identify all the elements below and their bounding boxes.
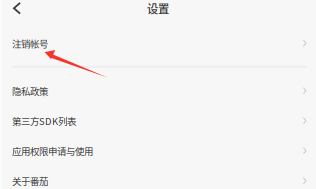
staticText: 关于番茄 (12, 174, 48, 188)
staticText: 注销帐号 (12, 36, 48, 50)
staticText: 应用权限申请与使用 (12, 144, 93, 158)
staticText: 第三方SDK列表 (12, 114, 76, 128)
staticText: 隐私政策 (12, 84, 48, 98)
staticText: 设置 (147, 0, 169, 16)
button[interactable]: Back (0, 0, 34, 18)
button[interactable]: 隐私政策 (0, 76, 316, 106)
button[interactable]: 关于番茄 (0, 166, 316, 189)
button[interactable]: 注销帐号 (0, 28, 316, 58)
button[interactable]: 第三方SDK列表 (0, 106, 316, 136)
button[interactable]: 应用权限申请与使用 (0, 136, 316, 166)
